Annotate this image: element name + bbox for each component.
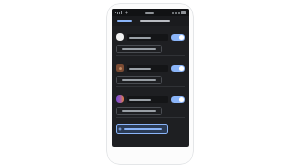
- button[interactable]: Ativado: [171, 65, 185, 72]
- button[interactable]: Gerenciar contas: [139, 18, 171, 24]
- button[interactable]: Ativado: [116, 93, 185, 105]
- button[interactable]: Ativado: [116, 62, 185, 74]
- button[interactable]: Conexões: [116, 18, 133, 24]
- button[interactable]: Remover deste dispositivo: [116, 107, 162, 115]
- button[interactable]: Remover deste dispositivo: [116, 45, 162, 53]
- button[interactable]: Adicionar outra conta: [116, 124, 168, 134]
- button[interactable]: Ativado: [116, 31, 185, 43]
- button[interactable]: Ativado: [171, 96, 185, 103]
- button[interactable]: Remover deste dispositivo: [116, 76, 162, 84]
- button[interactable]: Ativado: [171, 34, 185, 41]
